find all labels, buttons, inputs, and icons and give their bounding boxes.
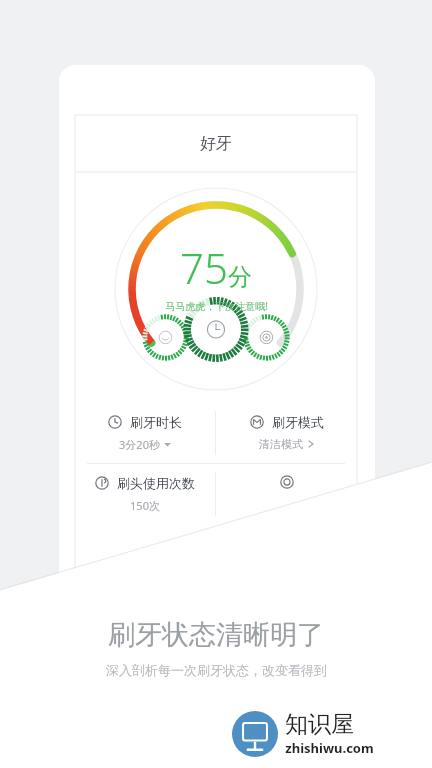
- staticText: 马马虎虎，下次注意哦!: [165, 299, 268, 313]
- staticText: 知识屋: [285, 710, 354, 739]
- button[interactable]: 刷牙时长: [75, 403, 215, 452]
- staticText: 清洁模式: [259, 437, 303, 451]
- staticText: 好牙: [200, 134, 232, 154]
- staticText: 深入剖析每一次刷牙状态，改变看得到: [106, 662, 327, 678]
- staticText: 75: [180, 239, 228, 296]
- staticText: 150次: [130, 498, 160, 513]
- staticText: 刷头使用次数: [117, 475, 195, 491]
- staticText: 分: [228, 262, 252, 292]
- button[interactable]: 刷头使用次数: [75, 464, 215, 513]
- staticText: 刷牙模式: [272, 414, 324, 430]
- staticText: 刷牙时长: [130, 414, 182, 430]
- button[interactable]: 统计: [216, 464, 357, 489]
- staticText: 3分20秒: [119, 437, 160, 452]
- staticText: 刷牙状态清晰明了: [108, 618, 324, 652]
- button[interactable]: 刷牙模式: [216, 403, 357, 451]
- staticText: zhishiwu.com: [285, 739, 374, 757]
